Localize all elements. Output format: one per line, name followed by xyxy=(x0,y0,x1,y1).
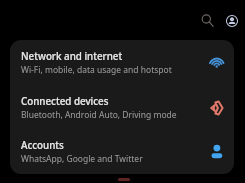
staticText: Accounts xyxy=(21,139,64,152)
staticText: Connected devices xyxy=(21,95,109,108)
button[interactable]: Search xyxy=(196,9,219,32)
staticText: Network and internet xyxy=(21,50,123,63)
button[interactable]: Accounts xyxy=(10,130,234,174)
staticText: Bluetooth, Android Auto, Driving mode xyxy=(21,109,177,121)
button[interactable]: Account xyxy=(220,9,243,32)
staticText: WhatsApp, Google and Twitter xyxy=(21,153,143,165)
staticText: Wi-Fi, mobile, data usage and hotspot xyxy=(21,64,172,76)
button[interactable]: Connected devices xyxy=(10,85,234,130)
button[interactable]: Network and internet xyxy=(10,40,234,85)
